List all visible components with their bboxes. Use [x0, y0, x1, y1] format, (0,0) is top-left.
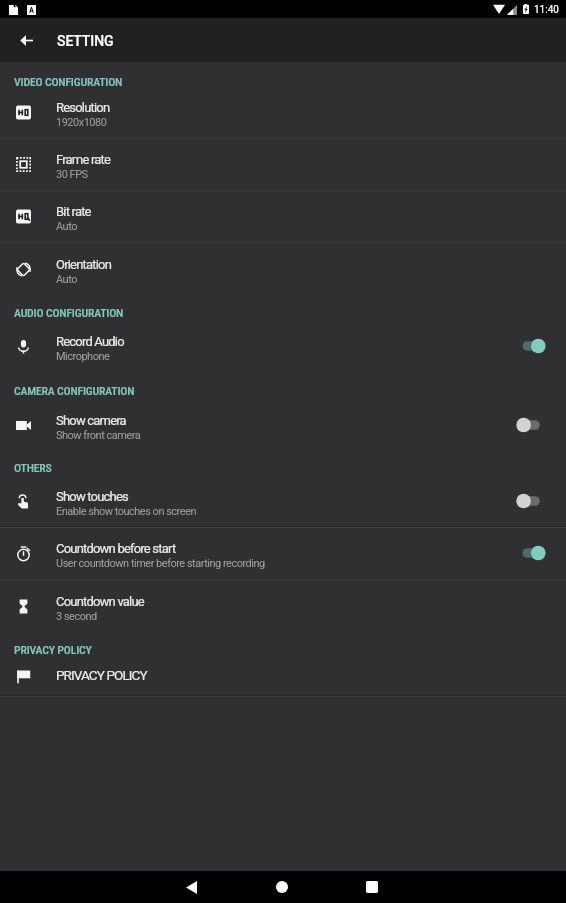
button[interactable]: Orientation	[0, 243, 566, 295]
staticText: OTHERS	[14, 461, 52, 475]
staticText: Auto	[56, 273, 77, 286]
staticText: 3 second	[56, 610, 97, 623]
staticText: CAMERA CONFIGURATION	[14, 384, 135, 398]
staticText: Record Audio	[56, 334, 124, 349]
staticText: Show camera	[56, 413, 126, 428]
button[interactable]: Back	[4, 18, 48, 62]
button[interactable]: Frame rate	[0, 139, 566, 189]
button[interactable]: Show camera	[0, 399, 566, 451]
staticText: Countdown before start	[56, 541, 176, 556]
button[interactable]: Countdown before start	[0, 528, 566, 578]
button[interactable]: Countdown value	[0, 580, 566, 632]
staticText: Frame rate	[56, 152, 111, 167]
staticText: Resolution	[56, 100, 110, 115]
staticText: PRIVACY POLICY	[14, 643, 92, 657]
staticText: User countdown timer before starting rec…	[56, 557, 265, 570]
button[interactable]: Show touches	[516, 492, 556, 510]
staticText: 11:40	[534, 4, 559, 16]
staticText: Show touches	[56, 489, 128, 504]
button[interactable]: Record Audio	[0, 320, 566, 372]
staticText: AUDIO CONFIGURATION	[14, 306, 124, 320]
staticText: Enable show touches on screen	[56, 505, 196, 518]
staticText: VIDEO CONFIGURATION	[14, 75, 123, 89]
staticText: Show front camera	[56, 429, 141, 442]
button[interactable]: Show camera	[516, 416, 556, 434]
staticText: Countdown value	[56, 594, 144, 609]
button[interactable]: Bit rate	[0, 191, 566, 241]
button[interactable]: Home	[237, 871, 327, 903]
button[interactable]: Record Audio	[516, 337, 556, 355]
button[interactable]: Recent apps	[327, 871, 417, 903]
button[interactable]: Show touches	[0, 476, 566, 526]
staticText: 30 FPS	[56, 168, 88, 181]
staticText: PRIVACY POLICY	[56, 667, 147, 683]
staticText: Microphone	[56, 350, 110, 363]
button[interactable]: Countdown before start	[516, 544, 556, 562]
button[interactable]: Resolution	[0, 87, 566, 137]
staticText: Orientation	[56, 257, 112, 272]
staticText: SETTING	[57, 33, 114, 49]
staticText: Bit rate	[56, 204, 91, 219]
button[interactable]: PRIVACY POLICY	[0, 657, 566, 695]
staticText: 1920x1080	[56, 116, 107, 129]
button[interactable]: Back	[146, 871, 236, 903]
staticText: Auto	[56, 220, 77, 233]
